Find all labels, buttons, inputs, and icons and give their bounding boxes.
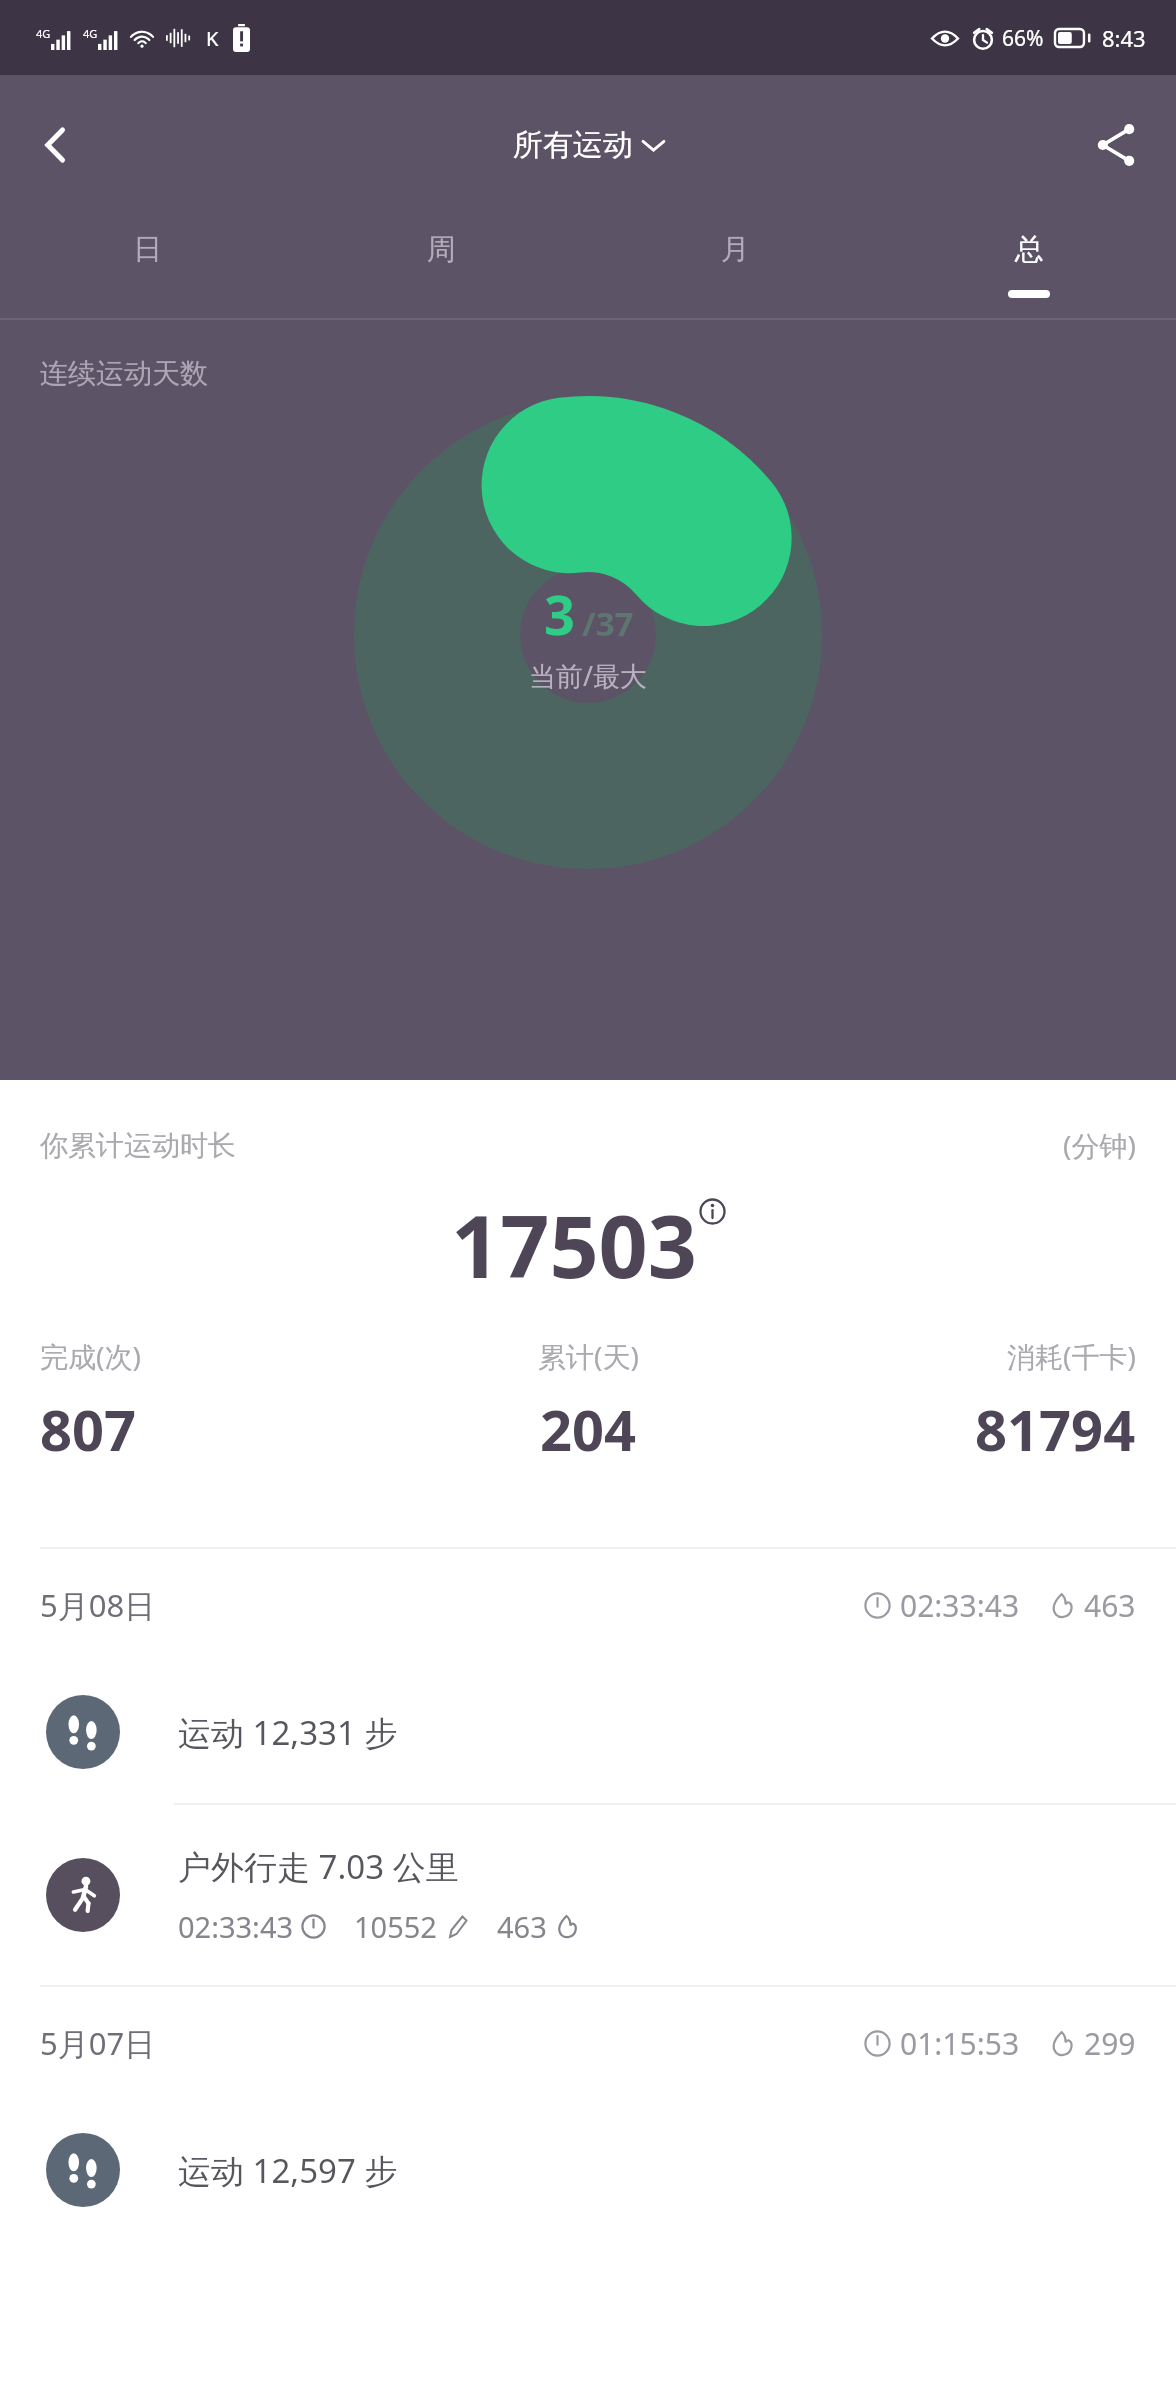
staticText: /37 <box>582 601 634 646</box>
staticText: 完成(次) <box>40 1337 141 1375</box>
staticText: 81794 <box>975 1391 1136 1467</box>
button[interactable]: 运动 12,331 步 <box>0 1661 1176 1803</box>
button[interactable]: 日 <box>0 215 294 320</box>
staticText: 3 <box>544 577 575 651</box>
staticText: K <box>206 25 219 52</box>
staticText: 运动 12,597 步 <box>178 2148 398 2193</box>
staticText: 月 <box>721 231 750 268</box>
staticText: 连续运动天数 <box>40 356 208 391</box>
staticText: 17503 <box>451 1186 697 1303</box>
staticText: 所有运动 <box>513 126 633 164</box>
staticText: 8:43 <box>1102 23 1146 53</box>
button[interactable]: 户外行走 7.03 公里 <box>0 1805 1176 1985</box>
staticText: 463 <box>1084 1585 1136 1626</box>
staticText: 运动 12,331 步 <box>178 1710 398 1755</box>
staticText: 5月08日 <box>40 1584 156 1626</box>
staticText: 02:33:43 <box>178 1907 294 1946</box>
staticText: 总 <box>1015 231 1044 268</box>
staticText: 你累计运动时长 <box>40 1128 236 1163</box>
staticText: 累计(天) <box>538 1337 639 1375</box>
staticText: 807 <box>40 1391 137 1467</box>
button[interactable]: 周 <box>294 215 588 320</box>
button[interactable]: Share <box>1074 103 1158 187</box>
staticText: 01:15:53 <box>900 2023 1020 2064</box>
button[interactable]: Back <box>14 103 98 187</box>
staticText: 消耗(千卡) <box>1007 1337 1136 1375</box>
staticText: 4G <box>36 26 51 41</box>
staticText: 5月07日 <box>40 2022 156 2064</box>
staticText: 66% <box>1002 24 1044 53</box>
staticText: 463 <box>497 1907 547 1946</box>
button[interactable]: 月 <box>588 215 882 320</box>
staticText: 当前/最大 <box>529 657 648 694</box>
button[interactable]: 运动 12,597 步 <box>0 2099 1176 2241</box>
staticText: 10552 <box>354 1907 437 1946</box>
button[interactable]: 总 <box>882 215 1176 320</box>
button[interactable]: 5月08日 <box>0 1549 1176 1661</box>
staticText: 户外行走 7.03 公里 <box>178 1844 459 1889</box>
staticText: 周 <box>427 231 456 268</box>
staticText: 02:33:43 <box>900 1585 1020 1626</box>
staticText: 299 <box>1084 2023 1136 2064</box>
button[interactable]: 5月07日 <box>0 1987 1176 2099</box>
button[interactable]: 所有运动 <box>499 116 678 174</box>
staticText: 日 <box>133 231 162 268</box>
staticText: 4G <box>83 26 98 41</box>
staticText: 204 <box>540 1391 637 1467</box>
staticText: (分钟) <box>1063 1126 1136 1164</box>
